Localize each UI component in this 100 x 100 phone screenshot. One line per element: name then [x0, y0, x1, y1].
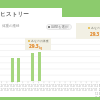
- staticText: 12/1: [17, 88, 23, 92]
- staticText: 12/1: [47, 84, 53, 88]
- staticText: 12/1: [59, 88, 65, 92]
- staticText: 12/1: [95, 84, 99, 92]
- staticText: 体重の推移: [2, 24, 20, 28]
- staticText: 12/1: [41, 88, 47, 92]
- staticText: 12/1: [11, 84, 17, 88]
- staticText: 12/1: [77, 84, 83, 88]
- staticText: 12/1: [29, 88, 35, 92]
- staticText: 12/1: [11, 88, 17, 92]
- staticText: 12/1: [89, 84, 95, 88]
- staticText: 12/1: [35, 88, 41, 92]
- staticText: 12/1: [5, 88, 11, 92]
- staticText: 12/1: [35, 84, 41, 88]
- staticText: 12/1: [41, 84, 47, 88]
- staticText: 12/1: [23, 88, 29, 92]
- staticText: 12/1: [89, 88, 95, 92]
- staticText: 12/1: [53, 84, 59, 88]
- staticText: 12/1: [0, 88, 5, 92]
- staticText: あなたの体重: [31, 39, 49, 43]
- staticText: 12/1: [65, 84, 71, 88]
- staticText: 12/1: [71, 84, 77, 88]
- staticText: 12/1: [0, 84, 5, 88]
- staticText: 12/1: [5, 84, 11, 88]
- staticText: 12/1: [29, 84, 35, 88]
- staticText: 12/1: [59, 84, 65, 88]
- staticText: あなたの体重: [91, 26, 100, 30]
- button[interactable]: 期間を選択: [46, 24, 72, 30]
- staticText: 12/1: [83, 88, 89, 92]
- staticText: 12/1: [83, 84, 89, 88]
- staticText: 12/1: [47, 88, 53, 92]
- staticText: 期間を選択: [51, 25, 69, 29]
- staticText: 29.3: [29, 43, 39, 50]
- staticText: 29.3: [90, 31, 100, 37]
- staticText: 12/1: [95, 92, 99, 100]
- staticText: ヒストリー: [0, 11, 29, 18]
- staticText: 12/1: [65, 88, 71, 92]
- staticText: 12/1: [17, 84, 23, 88]
- staticText: 12/1: [53, 88, 59, 92]
- staticText: 12/1: [23, 84, 29, 88]
- staticText: 12/1: [71, 88, 77, 92]
- staticText: kg: [39, 46, 43, 50]
- staticText: 12/1: [77, 88, 83, 92]
